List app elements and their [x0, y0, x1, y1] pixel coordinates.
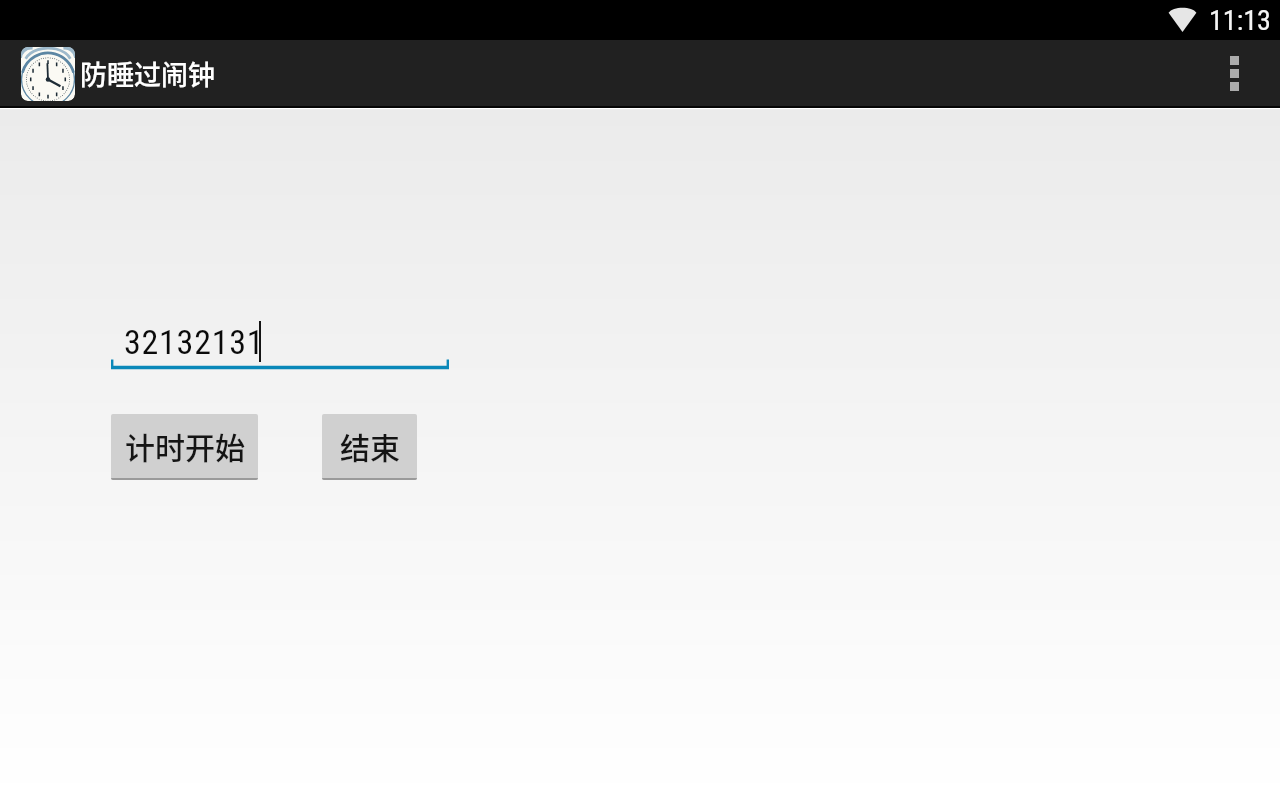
- staticText: 11:13: [1209, 4, 1271, 37]
- staticText: 结束: [340, 424, 400, 467]
- button[interactable]: More options: [1210, 40, 1258, 108]
- button[interactable]: 计时开始: [111, 414, 258, 480]
- button[interactable]: 32132131: [111, 305, 449, 375]
- other: Wi-Fi signal: [1168, 6, 1197, 32]
- button[interactable]: 结束: [322, 414, 417, 480]
- staticText: 防睡过闹钟: [80, 54, 215, 93]
- staticText: 计时开始: [125, 424, 245, 467]
- staticText: 32132131: [124, 322, 265, 362]
